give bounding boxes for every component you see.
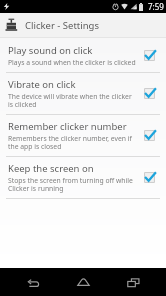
staticText: Vibrate on click (8, 78, 76, 91)
button[interactable]: Play sound on click (0, 39, 166, 72)
staticText: Keep the screen on (8, 162, 94, 175)
button[interactable]: Keep the screen on (0, 157, 166, 198)
button[interactable]: Play sound on click (143, 49, 156, 62)
button[interactable]: Home (66, 269, 100, 295)
button[interactable]: Recent apps (116, 269, 150, 295)
staticText: Play sound on click (8, 44, 93, 57)
button[interactable]: Vibrate on click (0, 73, 166, 114)
staticText: Remember clicker number (8, 120, 127, 133)
button[interactable]: Clicker - Settings (0, 13, 166, 37)
staticText: Plays a sound when the clicker is clicke… (8, 58, 136, 67)
staticText: 7:59 (148, 1, 164, 12)
staticText: Stops the screen from turning off while … (8, 176, 137, 193)
staticText: Clicker - Settings (25, 19, 99, 32)
staticText: Remembers the clicker number, even if th… (8, 134, 137, 151)
staticText: The device will vibrate when the clicker… (8, 92, 137, 109)
button[interactable]: Vibrate on click (143, 87, 156, 100)
button[interactable]: Keep the screen on (143, 171, 156, 184)
button[interactable]: Remember clicker number (0, 115, 166, 156)
button[interactable]: Remember clicker number (143, 129, 156, 142)
button[interactable]: Back (16, 269, 50, 295)
